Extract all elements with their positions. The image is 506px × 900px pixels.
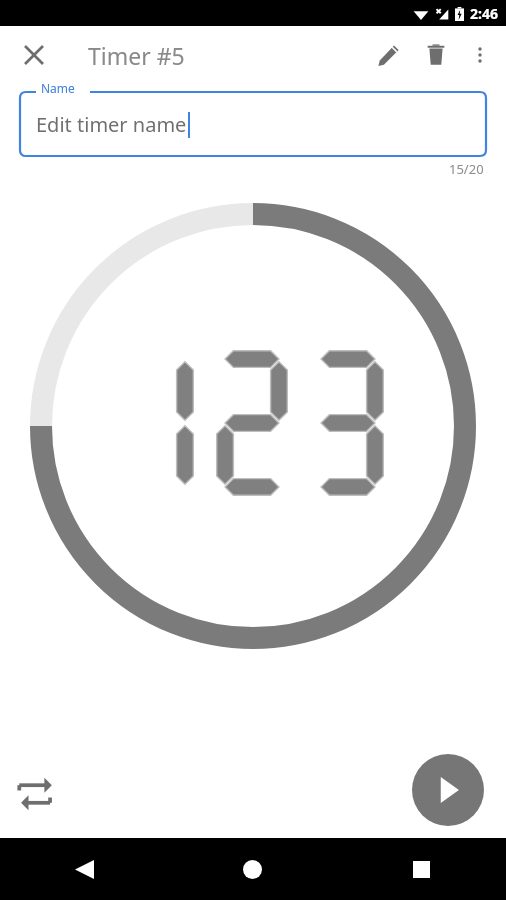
staticText: 2:46 xyxy=(470,4,498,23)
button[interactable]: Start timer xyxy=(412,754,484,826)
button[interactable]: Delete xyxy=(412,31,460,79)
button[interactable]: Back xyxy=(0,838,168,900)
staticText: Edit timer name xyxy=(36,111,187,138)
button[interactable]: Repeat xyxy=(8,766,64,822)
button[interactable]: Recents xyxy=(337,838,506,900)
staticText: Timer #5 xyxy=(88,40,185,71)
button[interactable]: Home xyxy=(168,838,337,900)
button[interactable]: More options xyxy=(460,35,500,75)
button[interactable]: Close xyxy=(10,31,58,79)
staticText: Name xyxy=(41,80,75,96)
button[interactable]: Edit xyxy=(364,31,412,79)
staticText: 15/20 xyxy=(449,160,484,178)
